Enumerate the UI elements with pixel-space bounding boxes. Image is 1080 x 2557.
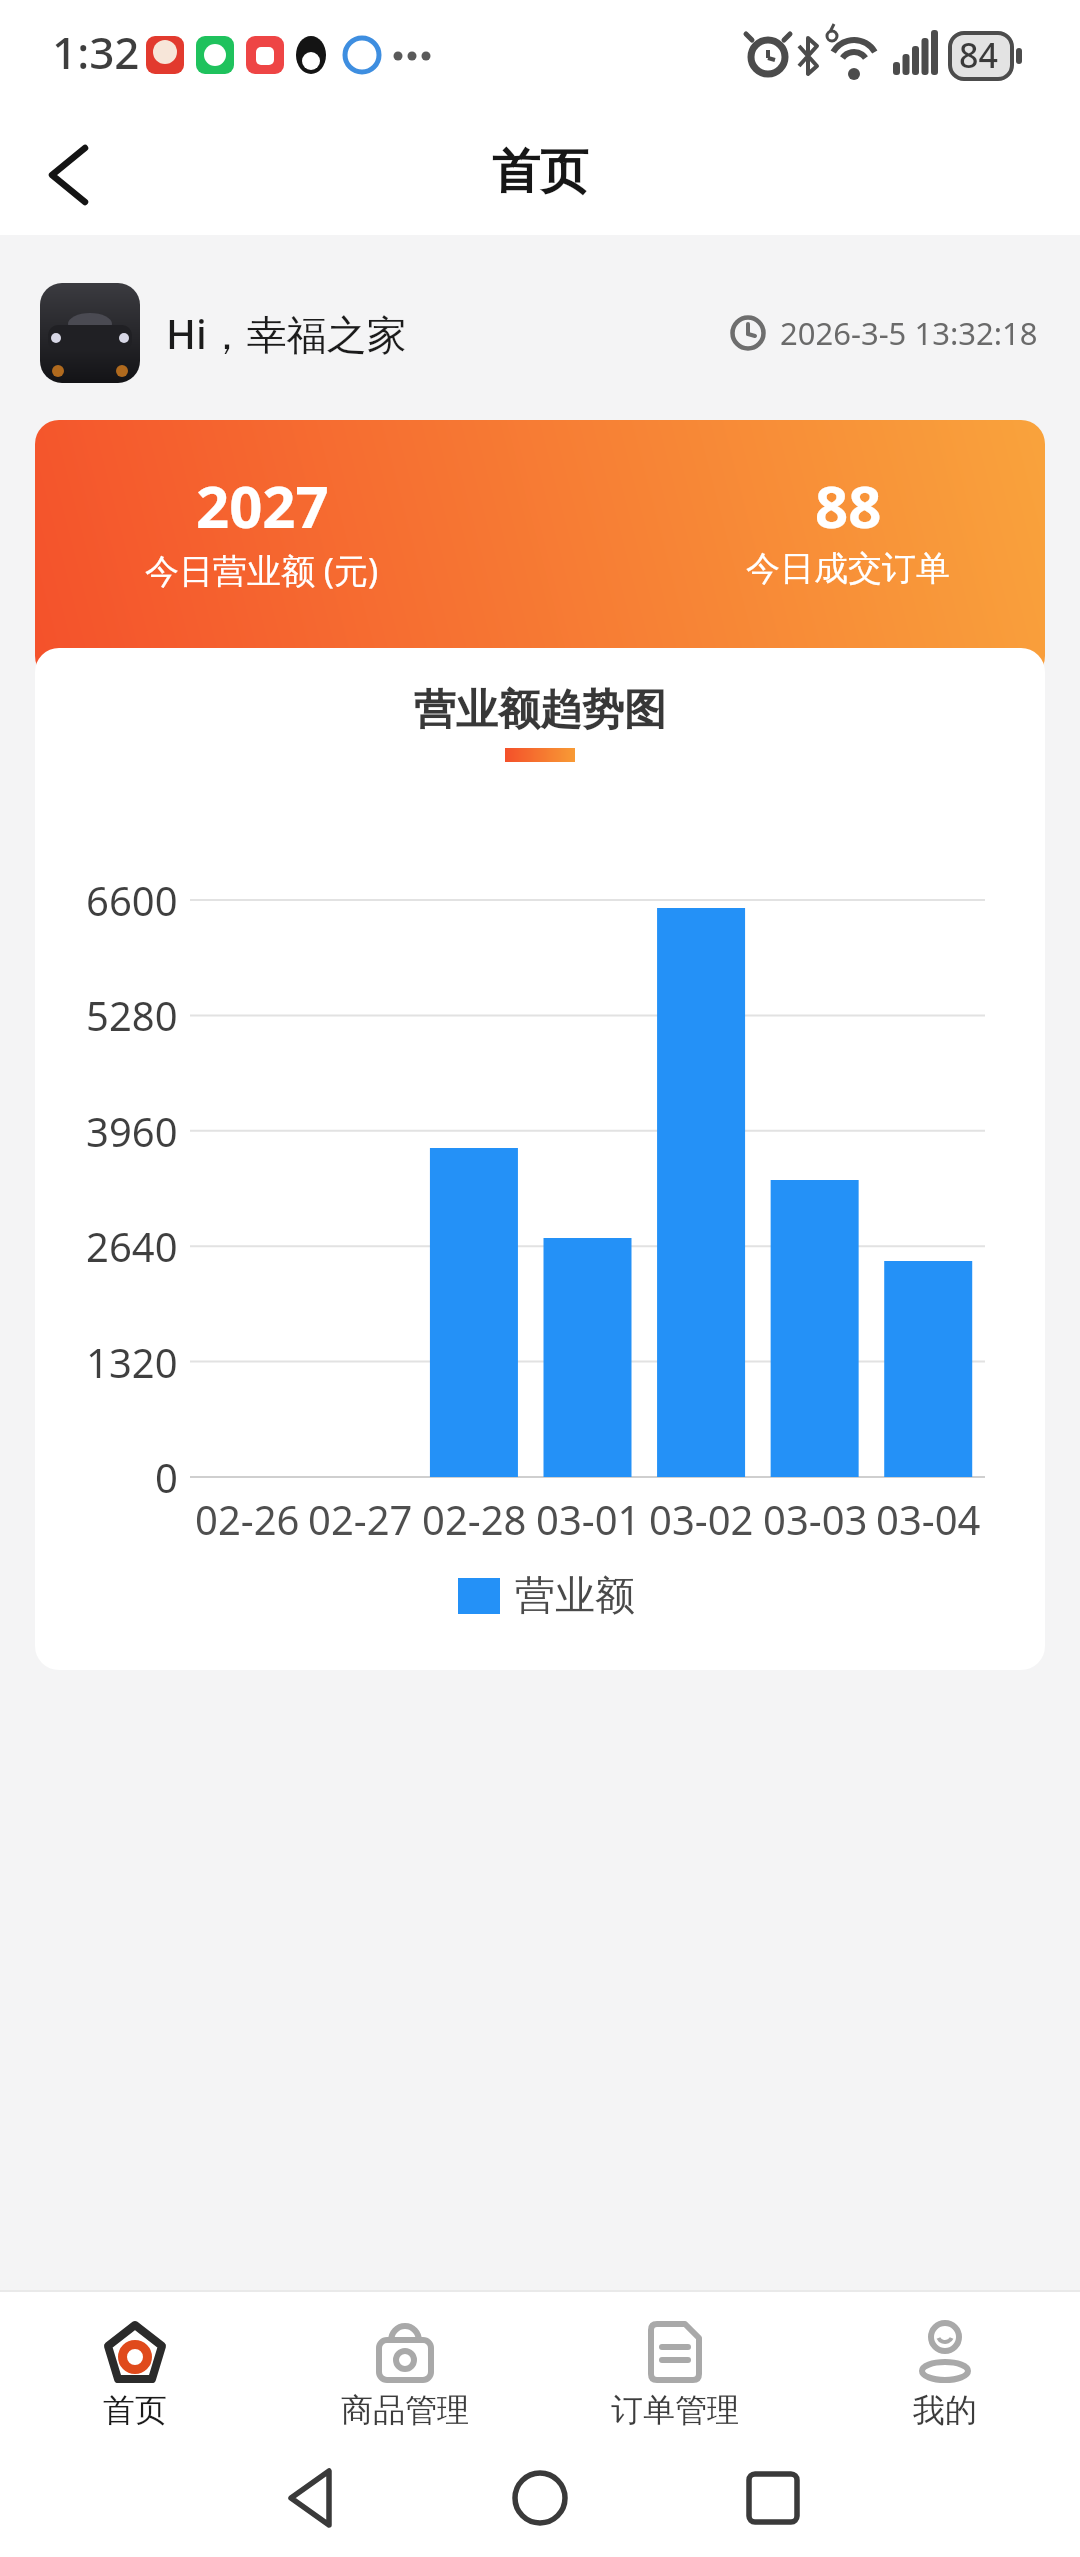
staticText: 03-03 bbox=[763, 1492, 868, 1546]
staticText: 首页 bbox=[492, 142, 588, 202]
staticText: 我的 bbox=[913, 2390, 977, 2430]
staticText: 5280 bbox=[86, 988, 178, 1042]
staticText: 订单管理 bbox=[611, 2390, 739, 2430]
staticText: 1320 bbox=[86, 1335, 178, 1389]
staticText: 02-27 bbox=[308, 1492, 413, 1546]
staticText: 今日成交订单 bbox=[746, 547, 950, 590]
staticText: 营业额趋势图 bbox=[414, 684, 666, 737]
staticText: 3960 bbox=[86, 1104, 178, 1158]
staticText: 02-28 bbox=[422, 1492, 527, 1546]
button[interactable]: 首页 bbox=[0, 2292, 270, 2450]
staticText: 84 bbox=[959, 32, 998, 78]
staticText: 2027 bbox=[196, 466, 329, 545]
button[interactable]: 订单管理 bbox=[540, 2292, 810, 2450]
staticText: 1:32 bbox=[52, 22, 140, 82]
staticText: 2026-3-5 13:32:18 bbox=[780, 312, 1038, 354]
button[interactable]: 商品管理 bbox=[270, 2292, 540, 2450]
staticText: 03-04 bbox=[876, 1492, 981, 1546]
staticText: Hi，幸福之家 bbox=[166, 306, 407, 361]
staticText: 0 bbox=[155, 1450, 178, 1504]
staticText: 首页 bbox=[103, 2390, 167, 2430]
button[interactable] bbox=[30, 135, 110, 215]
staticText: 2640 bbox=[86, 1219, 178, 1273]
staticText: 03-01 bbox=[536, 1492, 641, 1546]
staticText: 商品管理 bbox=[341, 2390, 469, 2430]
staticText: 6600 bbox=[86, 873, 178, 927]
staticText: 02-26 bbox=[195, 1492, 300, 1546]
staticText: 今日营业额 (元) bbox=[145, 547, 379, 593]
staticText: 03-02 bbox=[649, 1492, 754, 1546]
staticText: 营业额 bbox=[515, 1570, 635, 1620]
button[interactable]: 我的 bbox=[810, 2292, 1080, 2450]
staticText: 88 bbox=[815, 466, 882, 545]
